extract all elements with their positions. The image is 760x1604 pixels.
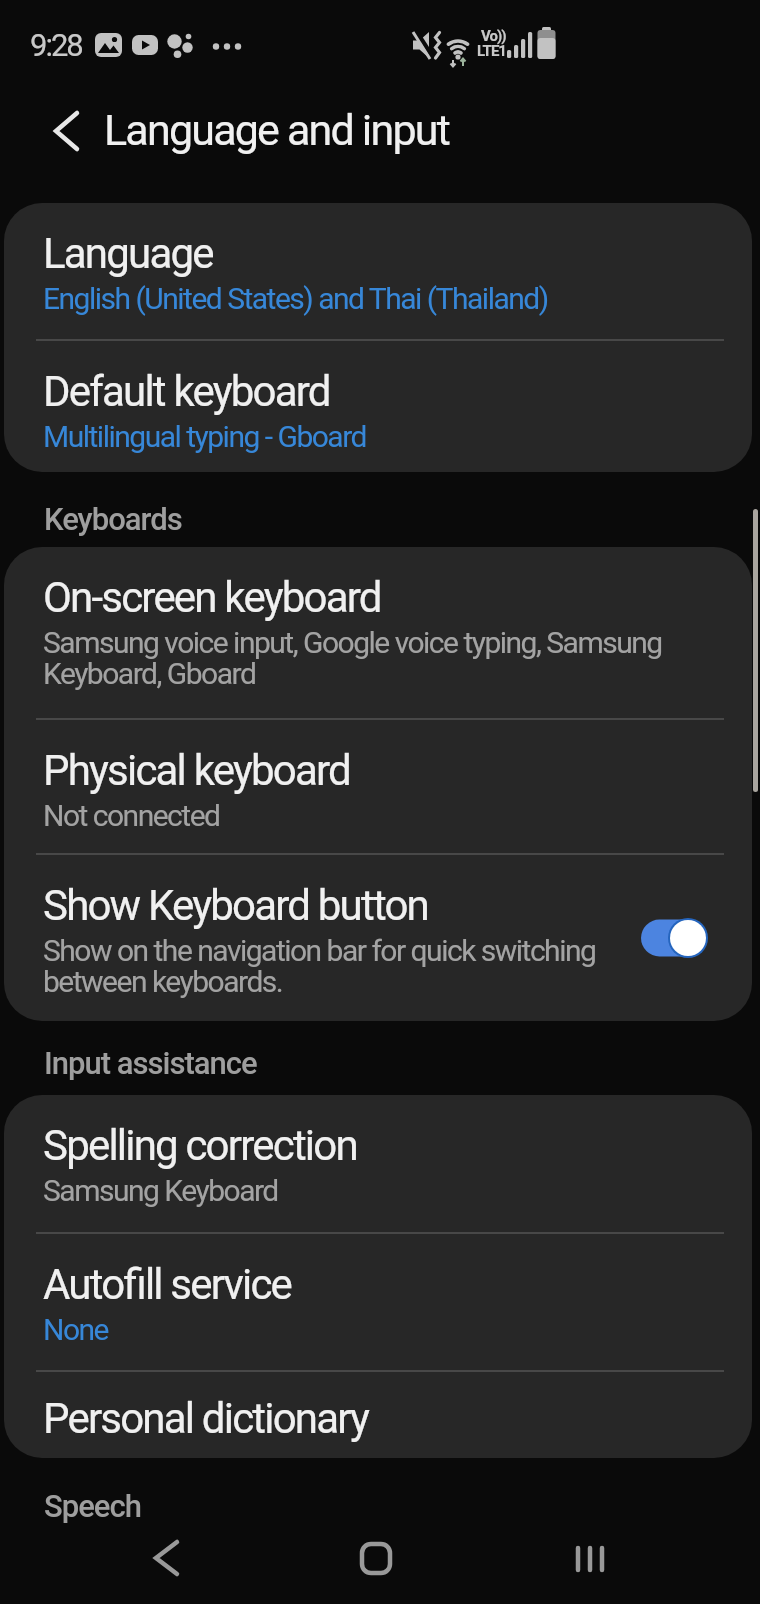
staticText: Input assistance (44, 1045, 257, 1081)
button[interactable] (550, 1518, 630, 1598)
staticText: None (43, 1312, 108, 1347)
staticText: On-screen keyboard (43, 573, 381, 622)
button[interactable] (125, 1518, 205, 1598)
staticText: Keyboards (44, 501, 182, 537)
staticText: Not connected (43, 798, 220, 833)
staticText: Show Keyboard button (43, 881, 428, 930)
staticText: Spelling correction (43, 1121, 357, 1170)
staticText: Speech (44, 1488, 141, 1524)
button[interactable]: Autofill service (4, 1234, 752, 1370)
button[interactable] (52, 110, 82, 152)
staticText: Samsung voice input, Google voice typing… (43, 625, 662, 692)
staticText: Language and input (104, 105, 449, 155)
staticText: Physical keyboard (43, 746, 350, 795)
button[interactable]: Spelling correction (4, 1095, 752, 1232)
staticText: Personal dictionary (43, 1394, 369, 1443)
staticText: English (United States) and Thai (Thaila… (43, 281, 548, 316)
staticText: Vo)) (481, 27, 506, 45)
button[interactable]: Physical keyboard (4, 720, 752, 853)
button[interactable]: On-screen keyboard (4, 547, 752, 718)
button[interactable]: Personal dictionary (4, 1372, 752, 1458)
staticText: Language (43, 229, 213, 278)
staticText: Default keyboard (43, 367, 330, 416)
button[interactable]: Show Keyboard button (4, 855, 752, 1021)
button[interactable] (336, 1518, 416, 1598)
button[interactable]: Language (4, 203, 752, 339)
staticText: Autofill service (43, 1260, 292, 1309)
staticText: Samsung Keyboard (43, 1173, 278, 1208)
staticText: Show on the navigation bar for quick swi… (43, 933, 596, 1000)
staticText: Multilingual typing - Gboard (43, 419, 366, 454)
staticText: LTE1 (477, 42, 506, 60)
staticText: 9:28 (30, 27, 82, 63)
button[interactable]: Default keyboard (4, 341, 752, 472)
